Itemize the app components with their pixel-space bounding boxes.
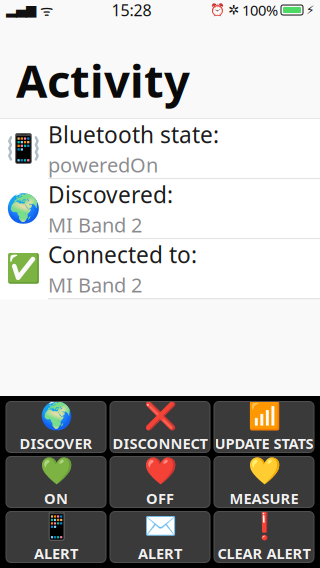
staticText: MI Band 2 — [48, 211, 142, 238]
staticText: Discovered: — [48, 179, 173, 209]
staticText: ❌ — [143, 401, 176, 431]
staticText: CLEAR ALERT — [217, 543, 310, 563]
staticText: 📶 — [247, 401, 280, 431]
staticText: poweredOn — [48, 151, 158, 178]
staticText: UPDATE STATS — [214, 433, 313, 453]
staticText: ⏰ — [210, 3, 225, 17]
button[interactable]: 💛 — [214, 456, 314, 507]
staticText: ✉️ — [143, 511, 176, 541]
staticText: 📱 — [39, 511, 72, 541]
button[interactable]: ❗️ — [214, 511, 314, 562]
staticText: Connected to: — [48, 239, 197, 269]
staticText: 💚 — [39, 456, 72, 486]
staticText: 📳 — [5, 133, 40, 165]
staticText: ON — [44, 488, 68, 508]
staticText: 🌍 — [5, 193, 40, 225]
staticText: 💛 — [247, 456, 280, 486]
button[interactable]: 🌍 — [6, 401, 106, 452]
staticText: ❤️ — [143, 456, 176, 486]
button[interactable]: 📳 — [0, 119, 320, 178]
staticText: Bluetooth state: — [48, 119, 219, 149]
button[interactable]: 📱 — [6, 511, 106, 562]
button[interactable]: ❤️ — [110, 456, 210, 507]
staticText: 🌍 — [39, 401, 72, 431]
button[interactable]: ✉️ — [110, 511, 210, 562]
staticText: OFF — [146, 488, 174, 508]
staticText: MEASURE — [229, 488, 298, 508]
button[interactable]: 📶 — [214, 401, 314, 452]
staticText: ✅ — [5, 253, 40, 285]
staticText: ⚡︎ — [306, 3, 314, 17]
staticText: Activity — [16, 50, 190, 110]
staticText: ᯤ — [36, 0, 53, 20]
staticText: 100% — [242, 0, 278, 20]
staticText: ALERT — [34, 543, 78, 563]
staticText: ✲ — [228, 2, 239, 17]
staticText: ALERT — [138, 543, 182, 563]
staticText: DISCOVER — [19, 433, 92, 453]
staticText: ▂▄▆ — [6, 2, 36, 17]
staticText: 15:28 — [111, 0, 151, 21]
button[interactable]: 🌍 — [0, 179, 320, 238]
button[interactable]: 💚 — [6, 456, 106, 507]
button[interactable]: ✅ — [0, 239, 320, 298]
staticText: DISCONNECT — [112, 433, 207, 453]
staticText: MI Band 2 — [48, 271, 142, 298]
staticText: ❗️ — [247, 511, 280, 541]
button[interactable]: ❌ — [110, 401, 210, 452]
